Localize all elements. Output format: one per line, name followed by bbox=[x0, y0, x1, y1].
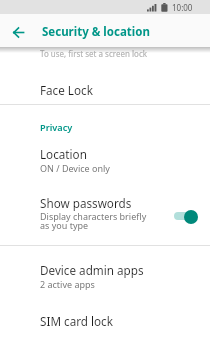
staticText: SIM card lock bbox=[40, 313, 113, 329]
button[interactable]: SIM card lock bbox=[0, 300, 210, 336]
staticText: 10:00 bbox=[172, 2, 193, 13]
button[interactable] bbox=[0, 14, 36, 47]
staticText: Location bbox=[40, 146, 87, 162]
button[interactable]: Device admin apps bbox=[0, 255, 210, 293]
staticText: Privacy bbox=[40, 121, 73, 134]
staticText: ON / Device only bbox=[40, 162, 110, 174]
staticText: Face Lock bbox=[40, 82, 93, 98]
button[interactable]: Location bbox=[0, 142, 210, 178]
staticText: To use, first set a screen lock bbox=[40, 48, 147, 59]
button[interactable]: Show passwords bbox=[0, 190, 210, 234]
staticText: as you type bbox=[40, 219, 89, 231]
staticText: Show passwords bbox=[40, 195, 132, 211]
staticText: Display characters briefly bbox=[40, 210, 147, 222]
staticText: Device admin apps bbox=[40, 262, 144, 278]
button[interactable]: Face Lock bbox=[0, 70, 210, 105]
staticText: 2 active apps bbox=[40, 278, 95, 290]
staticText: Security & location bbox=[42, 24, 150, 40]
